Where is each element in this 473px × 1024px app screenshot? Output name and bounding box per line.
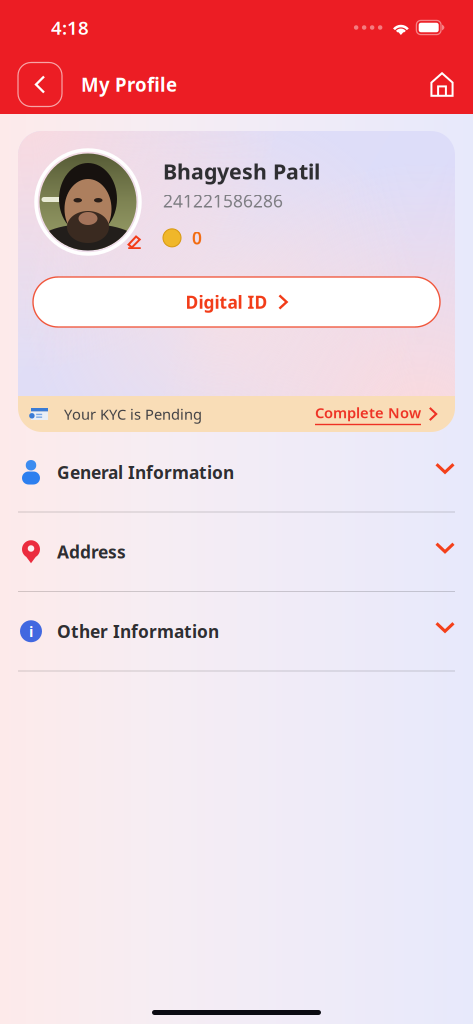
staticText: Other Information [57, 620, 219, 643]
staticText: General Information [57, 461, 234, 484]
staticText: i [29, 621, 33, 641]
button[interactable]: Complete Now [315, 403, 437, 425]
staticText: 0 [192, 226, 202, 249]
staticText: 241221586286 [163, 189, 283, 212]
button[interactable]: i [0, 592, 473, 670]
button[interactable]: Digital ID [33, 277, 440, 327]
staticText: Bhagyesh Patil [163, 157, 320, 185]
staticText: Complete Now [315, 403, 421, 422]
button[interactable]: Address [0, 512, 473, 591]
staticText: Your KYC is Pending [64, 404, 202, 424]
staticText: Digital ID [185, 290, 267, 313]
button[interactable]: Back [18, 62, 62, 106]
staticText: Address [57, 540, 126, 563]
button[interactable]: General Information [0, 433, 473, 511]
staticText: 4:18 [51, 15, 89, 40]
staticText: My Profile [81, 72, 177, 97]
button[interactable]: Home [420, 62, 464, 106]
